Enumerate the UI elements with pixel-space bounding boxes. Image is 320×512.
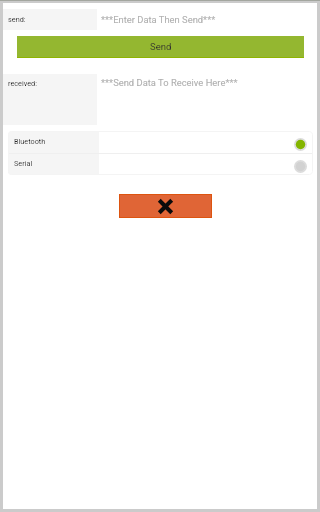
staticText: Bluetooth xyxy=(14,137,46,146)
button[interactable]: Send xyxy=(17,36,304,58)
staticText: ***Enter Data Then Send*** xyxy=(101,14,216,25)
button[interactable]: Bluetooth xyxy=(8,131,313,153)
staticText: send: xyxy=(8,15,26,24)
button[interactable]: Close xyxy=(120,195,211,217)
staticText: received: xyxy=(8,79,37,88)
staticText: Send xyxy=(150,41,172,52)
button[interactable]: Serial xyxy=(8,154,313,175)
staticText: Serial xyxy=(14,159,33,168)
staticText: ***Send Data To Receive Here*** xyxy=(101,77,238,88)
